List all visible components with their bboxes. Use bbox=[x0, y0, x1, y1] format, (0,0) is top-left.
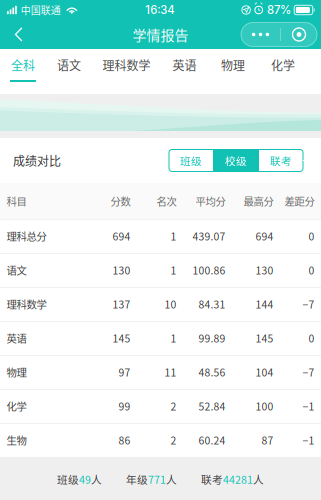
staticText: 物理 bbox=[221, 56, 245, 74]
button[interactable]: 校级 bbox=[214, 149, 258, 171]
button[interactable]: Back bbox=[4, 20, 34, 49]
staticText: 137 bbox=[112, 296, 130, 312]
staticText: 中国联通 bbox=[21, 3, 61, 17]
staticText: 人 bbox=[253, 471, 264, 487]
staticText: 生物 bbox=[6, 432, 26, 448]
staticText: 最高分 bbox=[243, 193, 273, 209]
staticText: −7 bbox=[302, 364, 314, 380]
staticText: 100.86 bbox=[192, 262, 225, 278]
staticText: −1 bbox=[302, 432, 314, 448]
staticText: 差距分 bbox=[284, 193, 314, 209]
button[interactable]: 英语 bbox=[161, 49, 208, 94]
staticText: 104 bbox=[255, 364, 273, 380]
staticText: 年级 bbox=[126, 471, 148, 487]
staticText: 名次 bbox=[156, 193, 176, 209]
staticText: 44281 bbox=[223, 471, 253, 487]
staticText: 化学 bbox=[271, 56, 295, 74]
staticText: 130 bbox=[255, 262, 273, 278]
staticText: 语文 bbox=[6, 262, 26, 278]
staticText: 联考 bbox=[270, 153, 292, 168]
staticText: 校级 bbox=[225, 153, 247, 168]
staticText: 145 bbox=[255, 330, 273, 346]
staticText: 班级 bbox=[180, 153, 202, 168]
staticText: 语文 bbox=[57, 56, 81, 74]
staticText: 理科总分 bbox=[6, 228, 46, 244]
staticText: 化学 bbox=[6, 398, 26, 414]
staticText: −7 bbox=[302, 296, 314, 312]
staticText: 理科数学 bbox=[6, 296, 46, 312]
staticText: 2 bbox=[170, 398, 176, 414]
staticText: 145 bbox=[112, 330, 130, 346]
staticText: 全科 bbox=[11, 56, 35, 74]
staticText: 成绩对比 bbox=[13, 152, 61, 169]
staticText: 理科数学 bbox=[102, 56, 150, 74]
staticText: 分数 bbox=[110, 193, 130, 209]
staticText: 130 bbox=[112, 262, 130, 278]
button[interactable]: 化学 bbox=[258, 49, 308, 94]
button[interactable]: 联考 bbox=[259, 149, 303, 171]
staticText: 班级 bbox=[57, 471, 79, 487]
staticText: 联考 bbox=[201, 471, 223, 487]
staticText: 2 bbox=[170, 432, 176, 448]
button[interactable]: 语文 bbox=[46, 49, 92, 94]
staticText: 11 bbox=[164, 364, 176, 380]
staticText: 学情报告 bbox=[132, 24, 188, 45]
staticText: 科目 bbox=[6, 193, 26, 209]
button[interactable]: Close mini program bbox=[281, 22, 317, 46]
staticText: 97 bbox=[118, 364, 130, 380]
button[interactable]: 物理 bbox=[208, 49, 258, 94]
staticText: 694 bbox=[255, 228, 273, 244]
staticText: 0 bbox=[308, 330, 314, 346]
staticText: 60.24 bbox=[198, 432, 225, 448]
staticText: 100 bbox=[255, 398, 273, 414]
button[interactable]: 班级 bbox=[169, 149, 213, 171]
button[interactable]: 理科数学 bbox=[92, 49, 161, 94]
staticText: 52.84 bbox=[198, 398, 225, 414]
staticText: 1 bbox=[170, 262, 176, 278]
staticText: 人 bbox=[166, 471, 177, 487]
staticText: 1 bbox=[170, 228, 176, 244]
staticText: 49 bbox=[79, 471, 91, 487]
staticText: 99 bbox=[118, 398, 130, 414]
staticText: 人 bbox=[91, 471, 102, 487]
staticText: 英语 bbox=[6, 330, 26, 346]
staticText: 86 bbox=[118, 432, 130, 448]
button[interactable]: More options bbox=[241, 22, 280, 46]
staticText: 平均分 bbox=[195, 193, 225, 209]
staticText: 84.31 bbox=[198, 296, 225, 312]
staticText: 16:34 bbox=[145, 3, 174, 17]
staticText: 439.07 bbox=[192, 228, 225, 244]
staticText: 物理 bbox=[6, 364, 26, 380]
staticText: 99.89 bbox=[198, 330, 225, 346]
button[interactable]: 全科 bbox=[0, 49, 46, 94]
staticText: 87% bbox=[267, 3, 291, 17]
staticText: −1 bbox=[302, 398, 314, 414]
staticText: 0 bbox=[308, 262, 314, 278]
staticText: 48.56 bbox=[198, 364, 225, 380]
staticText: 0 bbox=[308, 228, 314, 244]
staticText: 144 bbox=[255, 296, 273, 312]
staticText: 87 bbox=[261, 432, 273, 448]
staticText: 10 bbox=[164, 296, 176, 312]
staticText: 771 bbox=[148, 471, 166, 487]
staticText: 1 bbox=[170, 330, 176, 346]
staticText: 英语 bbox=[172, 56, 196, 74]
staticText: 694 bbox=[112, 228, 130, 244]
